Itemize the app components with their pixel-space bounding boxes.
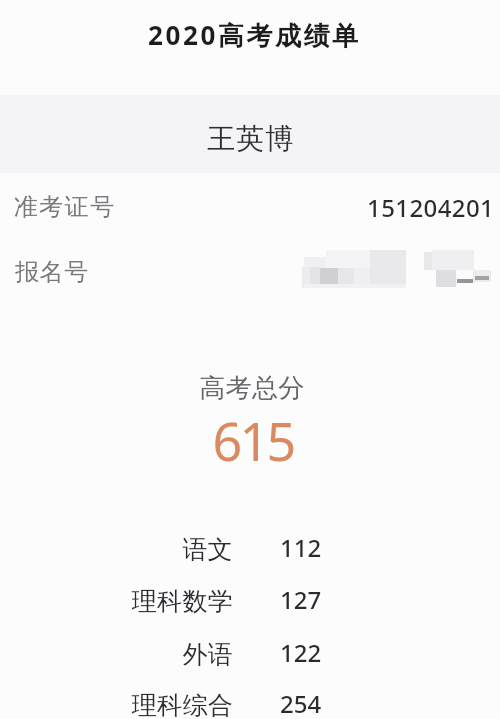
staticText: 127 <box>280 583 322 616</box>
button[interactable]: 理科数学 <box>0 586 500 634</box>
staticText: 外语 <box>0 639 233 670</box>
button[interactable]: 王英博 <box>0 95 500 173</box>
staticText: 122 <box>280 636 322 669</box>
button[interactable]: 语文 <box>0 534 500 582</box>
button[interactable]: 理科综合 <box>0 690 500 719</box>
button[interactable]: 报名号 已隐藏 <box>0 236 500 299</box>
staticText: 112 <box>280 531 322 564</box>
staticText: 151204201 <box>367 191 495 224</box>
staticText: 理科数学 <box>0 586 233 617</box>
staticText: 高考总分 <box>2 372 500 405</box>
button[interactable]: 外语 <box>0 639 500 687</box>
button[interactable]: 2020高考成绩单 <box>0 0 500 95</box>
staticText: 准考证号 <box>13 192 115 222</box>
staticText: 254 <box>280 687 322 719</box>
staticText: 报名号 <box>15 257 89 287</box>
staticText: 理科综合 <box>0 690 233 719</box>
button[interactable]: 准考证号 <box>0 173 500 236</box>
staticText: 王英博 <box>207 121 295 156</box>
staticText: 语文 <box>0 534 233 565</box>
staticText: 2020高考成绩单 <box>148 17 361 53</box>
staticText: 615 <box>3 405 500 476</box>
